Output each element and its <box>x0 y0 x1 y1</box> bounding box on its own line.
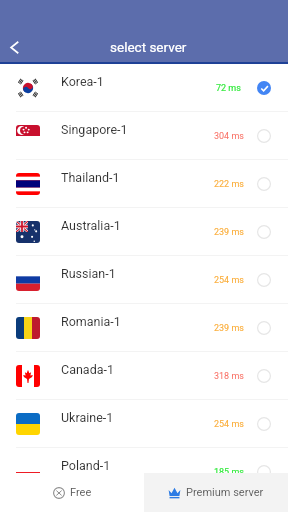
staticText: 304 ms <box>214 131 244 142</box>
staticText: Ukraine-1 <box>61 410 114 425</box>
staticText: Canada-1 <box>61 362 114 377</box>
staticText: 254 ms <box>214 275 244 286</box>
staticText: Free <box>70 486 92 499</box>
staticText: Russian-1 <box>61 266 116 281</box>
button[interactable]: Canada-1 <box>0 352 288 400</box>
staticText: 222 ms <box>214 179 244 190</box>
button[interactable]: Singapore-1 <box>0 112 288 160</box>
button[interactable]: Australia-1 <box>0 208 288 256</box>
staticText: 185 ms <box>214 467 244 478</box>
staticText: 239 ms <box>214 323 244 334</box>
staticText: Thailand-1 <box>61 170 120 185</box>
button[interactable]: Thailand-1 <box>0 160 288 208</box>
button[interactable]: Poland-1 <box>0 448 288 496</box>
button[interactable]: Back <box>2 32 26 62</box>
staticText: Romania-1 <box>61 314 121 329</box>
staticText: 72 ms <box>216 83 241 94</box>
button[interactable]: Ukraine-1 <box>0 400 288 448</box>
staticText: Australia-1 <box>61 218 121 233</box>
staticText: Korea-1 <box>61 74 104 89</box>
staticText: 318 ms <box>214 371 244 382</box>
button[interactable]: Premium server <box>144 473 288 512</box>
staticText: select server <box>110 39 187 55</box>
staticText: 239 ms <box>214 227 244 238</box>
button[interactable]: Russian-1 <box>0 256 288 304</box>
staticText: Premium server <box>186 486 264 499</box>
button[interactable]: Romania-1 <box>0 304 288 352</box>
staticText: Singapore-1 <box>61 122 128 137</box>
staticText: Poland-1 <box>61 458 111 473</box>
staticText: 254 ms <box>214 419 244 430</box>
button[interactable]: Free <box>0 473 144 512</box>
button[interactable]: Korea-1 <box>0 64 288 112</box>
